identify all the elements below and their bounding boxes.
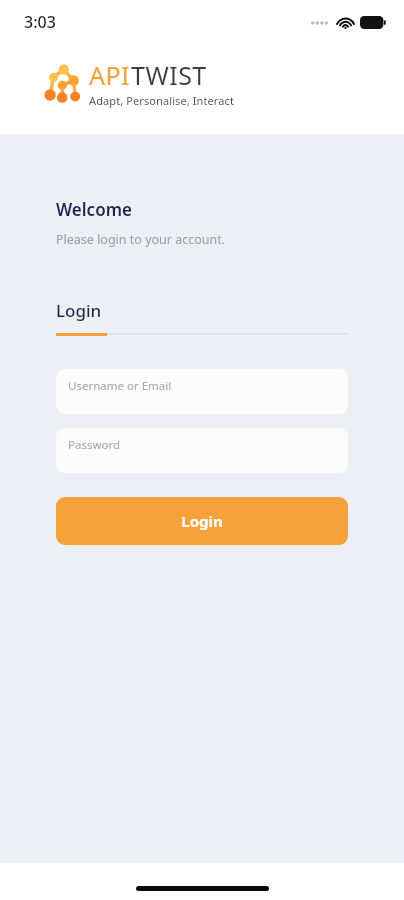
staticText: Login xyxy=(181,511,223,531)
button[interactable]: Password xyxy=(56,428,348,473)
staticText: Login xyxy=(56,299,102,322)
button[interactable]: Username or Email xyxy=(56,369,348,414)
staticText: TWIST xyxy=(131,58,207,92)
staticText: Adapt, Personalise, Interact xyxy=(89,93,235,108)
staticText: Username or Email xyxy=(68,378,172,394)
staticText: API xyxy=(89,58,131,92)
staticText: Welcome xyxy=(56,198,132,221)
staticText: Please login to your account. xyxy=(56,231,226,248)
staticText: Password xyxy=(68,437,121,453)
button[interactable]: Login xyxy=(56,497,348,545)
staticText: 3:03 xyxy=(24,11,56,33)
button[interactable]: Login xyxy=(56,299,348,336)
